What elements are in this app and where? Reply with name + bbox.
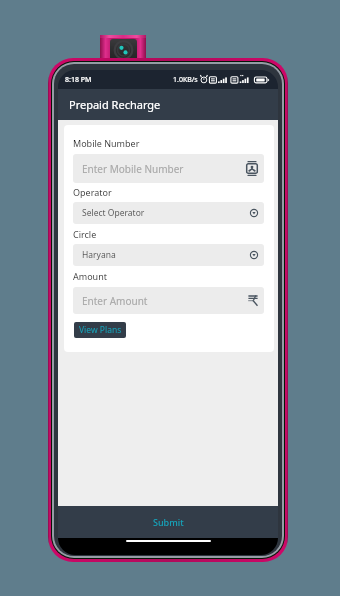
staticText: Enter Amount: [82, 294, 148, 308]
staticText: Circle: [73, 228, 97, 240]
other: Open dropdown: [250, 209, 258, 217]
button[interactable]: Select Operator: [73, 202, 264, 224]
button[interactable]: Enter Amount: [73, 287, 264, 314]
other: Pick contact: [246, 161, 258, 176]
staticText: Haryana: [82, 249, 116, 261]
staticText: Prepaid Recharge: [69, 97, 161, 112]
other: Rupees: [248, 295, 258, 306]
staticText: Amount: [73, 270, 107, 282]
staticText: Enter Mobile Number: [82, 162, 184, 176]
button[interactable]: Submit: [58, 506, 278, 538]
button[interactable]: View Plans: [74, 322, 126, 338]
staticText: Select Operator: [82, 207, 145, 219]
staticText: 8:18 PM: [65, 75, 92, 85]
staticText: View Plans: [79, 324, 122, 336]
staticText: Operator: [73, 186, 112, 198]
button[interactable]: Haryana: [73, 244, 264, 266]
other: Open dropdown: [250, 251, 258, 259]
button[interactable]: Enter Mobile Number: [73, 154, 264, 183]
staticText: Submit: [153, 516, 184, 528]
staticText: Mobile Number: [73, 137, 140, 149]
staticText: 1.0KB/s: [173, 75, 198, 85]
